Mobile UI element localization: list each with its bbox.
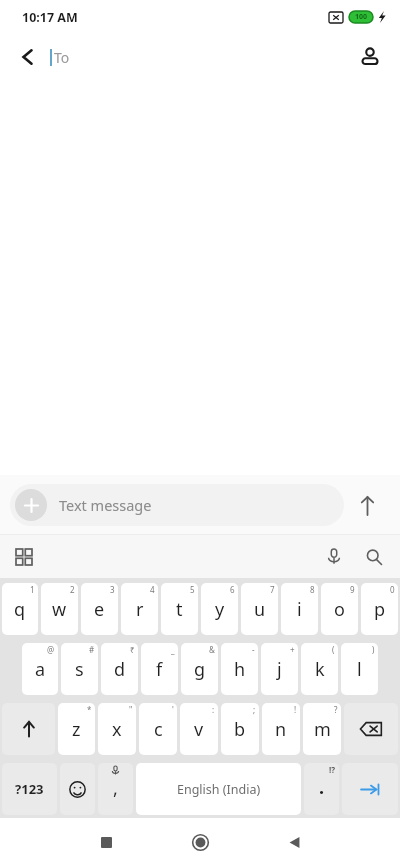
staticText: + [290,644,295,655]
staticText: j [277,657,282,682]
staticText: 1 [30,584,35,595]
button[interactable]: h [221,643,258,695]
button[interactable]: Emoji [60,763,95,815]
staticText: ( [332,644,335,655]
button[interactable]: Shift [2,703,55,755]
button[interactable]: Back [266,818,322,866]
button[interactable]: Apps [4,537,44,577]
staticText: z [72,717,81,742]
staticText: , [113,776,118,801]
staticText: 5 [190,584,195,595]
button[interactable]: Send [344,482,390,528]
button[interactable]: v [180,703,218,755]
staticText: 0 [390,584,395,595]
button[interactable]: w [41,583,78,635]
staticText: r [136,597,144,622]
button[interactable]: k [301,643,338,695]
button[interactable]: t [161,583,198,635]
staticText: ) [372,644,375,655]
button[interactable]: g [181,643,218,695]
button[interactable]: Back [6,35,50,79]
button[interactable]: j [261,643,298,695]
button[interactable]: p [361,583,398,635]
staticText: w [52,597,67,622]
staticText: o [334,597,345,622]
button[interactable]: m [303,703,341,755]
button[interactable]: b [221,703,259,755]
button[interactable]: d [101,643,138,695]
button[interactable]: x [98,703,136,755]
button[interactable]: , [98,763,133,815]
staticText: d [114,657,126,682]
button[interactable]: f [141,643,178,695]
button[interactable]: n [262,703,300,755]
staticText: 4 [150,584,155,595]
staticText: Text message [59,495,152,515]
staticText: ! [294,704,297,715]
button[interactable]: Next [342,763,398,815]
staticText: f [156,657,163,682]
staticText: p [374,597,386,622]
button[interactable]: Text message [10,484,344,526]
staticText: 9 [350,584,355,595]
staticText: e [94,597,105,622]
staticText: ' [172,704,174,715]
button[interactable]: z [58,703,95,755]
button[interactable]: u [241,583,278,635]
button[interactable]: l [341,643,378,695]
staticText: English (India) [177,781,261,798]
staticText: ; [253,704,256,715]
button[interactable]: Add contact [348,35,392,79]
button[interactable]: i [281,583,318,635]
staticText: s [75,657,84,682]
button[interactable]: o [321,583,358,635]
staticText: # [89,644,95,655]
staticText: h [234,657,246,682]
staticText: ?123 [15,780,44,798]
staticText: 100 [355,12,368,22]
button[interactable]: Search [354,537,394,577]
staticText: q [14,597,26,622]
staticText: k [315,657,325,682]
staticText: _ [171,644,175,655]
button[interactable]: Home [172,818,228,866]
staticText: ? [334,704,338,715]
button[interactable]: ?123 [2,763,57,815]
staticText: 6 [230,584,235,595]
staticText: a [35,657,46,682]
staticText: " [129,704,133,715]
staticText: 8 [310,584,315,595]
staticText: 3 [110,584,115,595]
button[interactable]: . [304,763,339,815]
button[interactable]: s [61,643,98,695]
button[interactable]: Backspace [344,703,398,755]
staticText: 7 [270,584,275,595]
button[interactable]: Recents [78,818,134,866]
staticText: : [212,704,215,715]
staticText: 10:17 AM [22,9,78,26]
staticText: y [215,597,225,622]
staticText: u [254,597,266,622]
button[interactable]: Voice input [314,537,354,577]
staticText: v [194,717,204,742]
staticText: & [209,644,215,655]
staticText: b [234,717,246,742]
button[interactable]: e [81,583,118,635]
button[interactable]: y [201,583,238,635]
button[interactable]: c [139,703,177,755]
staticText: x [112,717,122,742]
button[interactable]: English (India) [136,763,301,815]
staticText: m [314,717,331,742]
staticText: c [154,717,163,742]
staticText: - [252,644,255,655]
button[interactable]: r [121,583,158,635]
button[interactable]: q [2,583,38,635]
staticText: i [297,597,302,622]
staticText: l [357,657,362,682]
staticText: . [319,775,325,800]
staticText: t [176,597,183,622]
staticText: * [87,704,92,715]
button[interactable]: a [22,643,58,695]
staticText: ₹ [130,644,135,655]
staticText: g [194,657,206,682]
